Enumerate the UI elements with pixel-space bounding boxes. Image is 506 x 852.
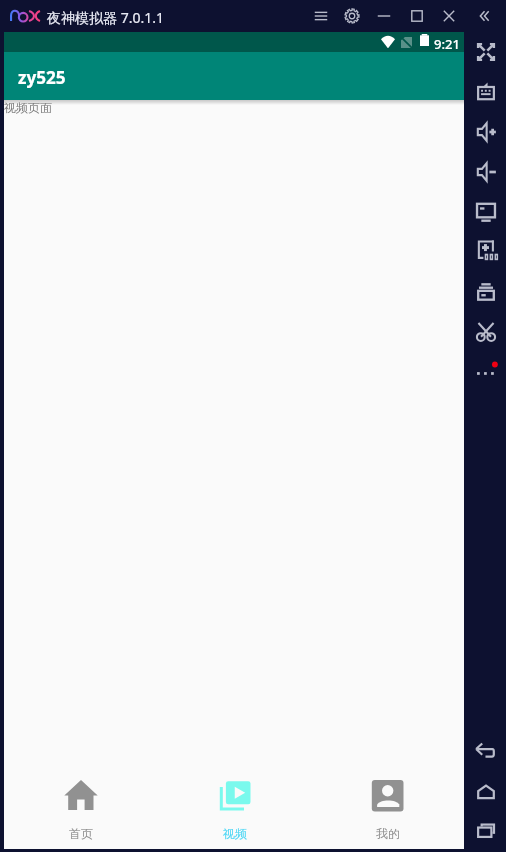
staticText: 视频页面 [4,100,52,115]
button[interactable]: Cut [473,319,499,345]
button[interactable]: Volume up [473,119,499,145]
staticText: 首页 [69,826,93,841]
staticText: 夜神模拟器 7.0.1.1 [47,8,164,27]
button[interactable]: Fullscreen [473,39,499,65]
button[interactable]: Keyboard [473,79,499,105]
button[interactable]: Menu [308,3,334,29]
button[interactable]: Maximize [404,3,430,29]
button[interactable]: Home [473,779,499,805]
button[interactable]: 我的 [311,775,464,849]
button[interactable]: More [473,358,499,384]
button[interactable]: 视频 [158,775,311,849]
button[interactable]: Settings [339,3,365,29]
staticText: zy525 [18,66,66,89]
staticText: 9:21 [434,35,460,53]
staticText: 视频 [223,826,247,841]
button[interactable]: Screenshot [473,199,499,225]
button[interactable]: Install APK [473,239,499,265]
button[interactable]: Volume down [473,159,499,185]
button[interactable]: 首页 [4,775,158,849]
button[interactable]: Minimize [371,3,397,29]
button[interactable]: Back [473,738,499,764]
button[interactable]: Close [436,3,462,29]
button[interactable]: Collapse toolbar [471,3,497,29]
staticText: 我的 [376,826,400,841]
button[interactable]: Recents [473,818,499,844]
button[interactable]: File manager [473,279,499,305]
